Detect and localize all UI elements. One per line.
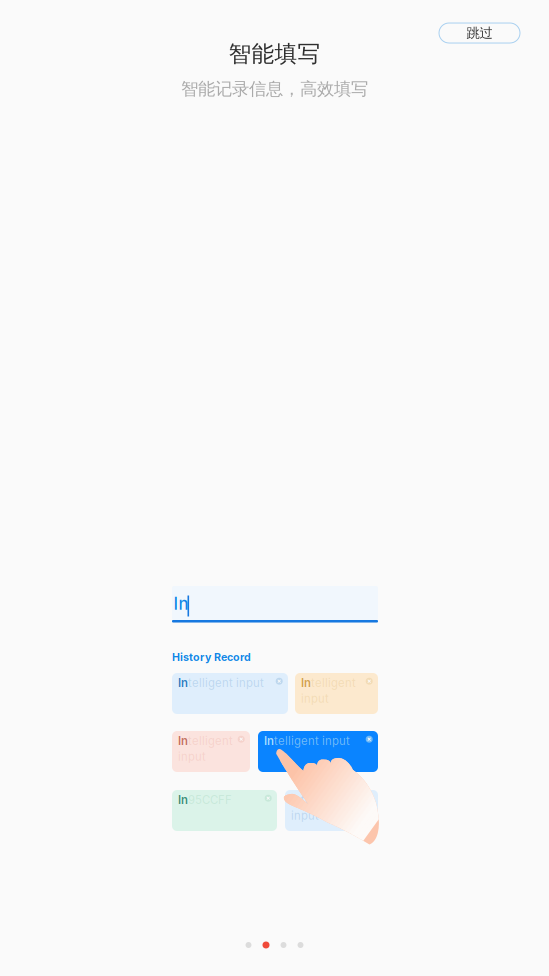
button[interactable]: In xyxy=(172,731,250,772)
staticText: In xyxy=(264,734,274,748)
button[interactable]: In xyxy=(258,731,378,772)
staticText: In xyxy=(301,676,311,690)
staticText: 95CCFF xyxy=(188,793,232,807)
staticText: 智能填写 xyxy=(228,40,320,68)
button[interactable]: In xyxy=(172,790,277,831)
staticText: In xyxy=(178,793,188,807)
staticText: telligent input xyxy=(274,734,350,748)
staticText: In xyxy=(173,593,188,614)
staticText: In xyxy=(178,676,188,690)
staticText: telligent xyxy=(301,793,346,807)
staticText: telligent input xyxy=(188,676,264,690)
staticText: input xyxy=(291,809,319,822)
staticText: input xyxy=(301,692,329,705)
staticText: telligent xyxy=(311,676,356,690)
staticText: telligent xyxy=(188,734,233,748)
staticText: In xyxy=(291,793,301,807)
button[interactable]: 跳过 xyxy=(439,23,520,43)
button[interactable]: In xyxy=(295,673,378,714)
staticText: In xyxy=(178,734,188,748)
staticText: 智能记录信息，高效填写 xyxy=(181,78,368,100)
button[interactable]: In xyxy=(285,790,378,831)
staticText: 跳过 xyxy=(466,25,492,41)
staticText: History Record xyxy=(172,650,251,663)
button[interactable]: In xyxy=(172,673,288,714)
staticText: input xyxy=(178,750,206,763)
